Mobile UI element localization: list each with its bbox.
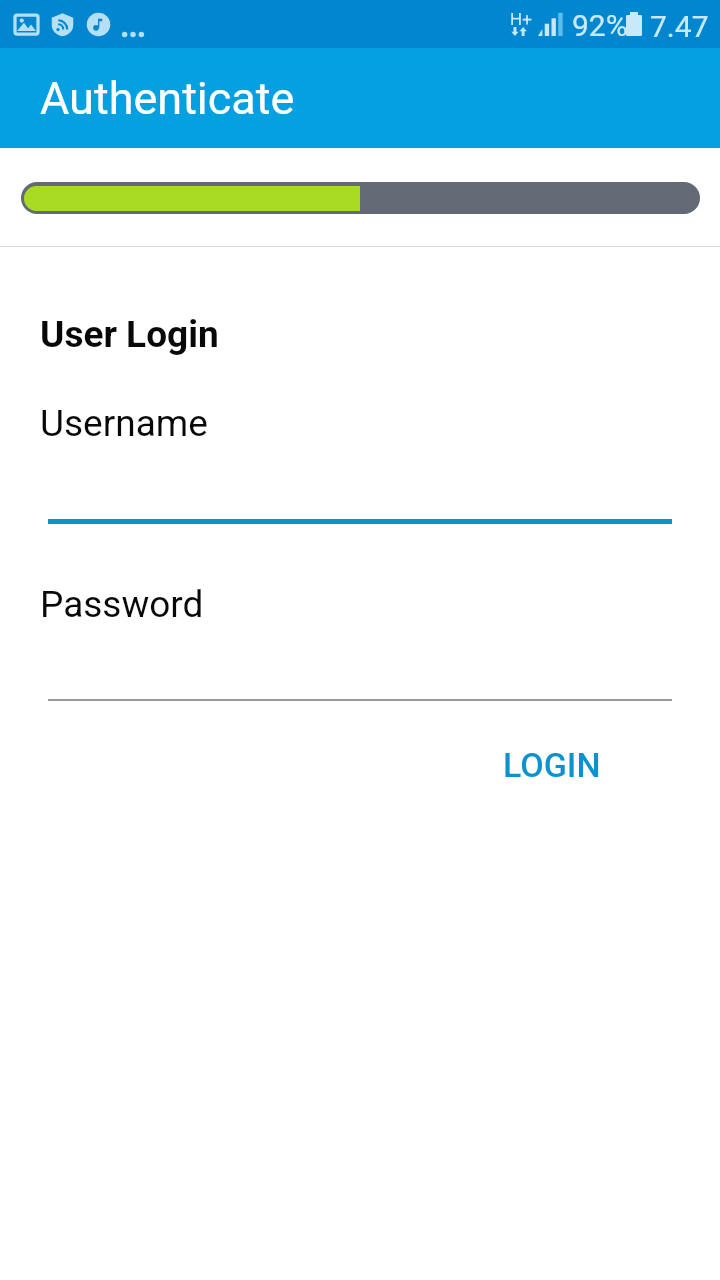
other: Mobile data activity	[510, 27, 529, 36]
staticText: Password	[40, 583, 204, 626]
staticText: LOGIN	[503, 745, 601, 785]
staticText: 92%	[572, 8, 628, 43]
other: Battery	[626, 12, 642, 36]
button[interactable]: Password	[40, 570, 672, 710]
other: Music playing	[86, 12, 111, 37]
staticText: 7.47	[650, 9, 709, 44]
staticText: User Login	[40, 313, 219, 356]
other: Secure Wi-Fi	[50, 12, 75, 37]
button[interactable]: LOGIN	[479, 729, 625, 801]
other: Signal strength	[538, 13, 563, 36]
other: More notifications	[122, 13, 144, 37]
staticText: Username	[40, 402, 208, 445]
staticText: Authenticate	[40, 72, 295, 125]
button[interactable]: Username	[40, 390, 672, 530]
other: Screenshot captured	[14, 12, 39, 37]
staticText: H+	[510, 9, 532, 29]
